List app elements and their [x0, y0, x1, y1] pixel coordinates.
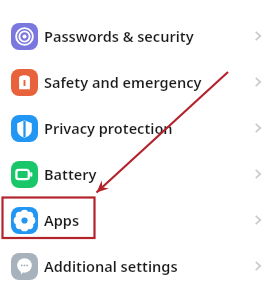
- staticText: Privacy protection: [44, 118, 173, 138]
- staticText: Passwords & security: [44, 26, 194, 46]
- button[interactable]: Passwords & security: [0, 13, 276, 59]
- staticText: Battery: [44, 164, 97, 184]
- staticText: Apps: [44, 210, 80, 230]
- button[interactable]: Additional settings: [0, 243, 276, 289]
- button[interactable]: Apps: [0, 197, 276, 243]
- button[interactable]: Safety and emergency: [0, 59, 276, 105]
- staticText: Safety and emergency: [44, 72, 202, 92]
- staticText: Additional settings: [44, 256, 178, 276]
- button[interactable]: Battery: [0, 151, 276, 197]
- button[interactable]: Privacy protection: [0, 105, 276, 151]
